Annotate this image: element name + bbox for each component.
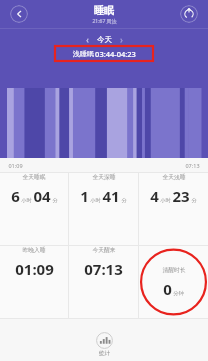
staticText: 全天深睡 (92, 173, 116, 180)
staticText: 浅睡眠 (72, 49, 95, 59)
staticText: 6 (11, 186, 20, 206)
staticText: 41 (102, 186, 120, 206)
staticText: 今天 (97, 35, 112, 44)
staticText: 全天睡眠 (22, 173, 46, 180)
staticText: 今天醒来 (92, 246, 116, 253)
button[interactable]: 今天醒来 (69, 246, 138, 279)
staticText: 分 (121, 197, 127, 204)
staticText: 04 (33, 186, 51, 206)
staticText: 分 (191, 197, 197, 204)
staticText: 1 (80, 186, 89, 206)
button[interactable]: Sync (180, 5, 198, 23)
button[interactable]: 清醒时长 (139, 246, 208, 318)
staticText: › (120, 34, 123, 45)
staticText: 分钟 (173, 290, 184, 297)
button[interactable]: 全天睡眠 (0, 173, 68, 206)
staticText: 睡眠 (94, 4, 114, 17)
staticText: 4 (150, 186, 159, 206)
staticText: 小时 (21, 197, 32, 204)
button[interactable]: 统计 (88, 330, 121, 359)
button[interactable]: ‹ (76, 32, 133, 47)
staticText: 清醒时长 (162, 266, 186, 273)
staticText: 全天浅睡 (162, 173, 186, 180)
button[interactable]: Back (10, 5, 28, 23)
staticText: 小时 (90, 197, 101, 204)
staticText: 0 (163, 279, 172, 299)
staticText: 昨晚入睡 (22, 246, 46, 253)
button[interactable]: 全天浅睡 (139, 173, 208, 206)
button[interactable]: 昨晚入睡 (0, 246, 68, 279)
staticText: 23 (172, 186, 190, 206)
staticText: 统计 (99, 350, 110, 357)
staticText: 01:09 (8, 162, 23, 169)
staticText: 小时 (160, 197, 171, 204)
staticText: ‹ (86, 34, 89, 45)
staticText: 07:13 (185, 162, 200, 169)
button[interactable]: 全天深睡 (69, 173, 138, 206)
staticText: 分 (52, 197, 58, 204)
staticText: 21:67 周法 (92, 18, 117, 25)
staticText: 01:09 (15, 259, 54, 279)
staticText: 07:13 (84, 259, 123, 279)
staticText: 03:44-04:23 (95, 49, 136, 59)
